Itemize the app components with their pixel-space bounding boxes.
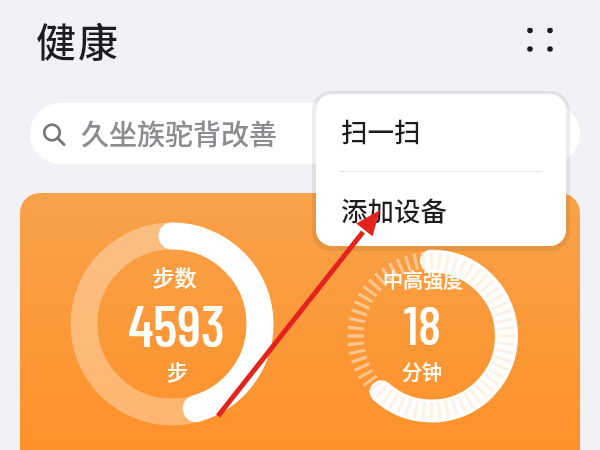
staticText: 扫一扫 — [341, 111, 421, 149]
staticText: 步数 — [152, 260, 197, 292]
staticText: 18 — [404, 292, 441, 352]
button[interactable] — [20, 193, 580, 450]
button[interactable]: 添加设备 — [316, 172, 566, 246]
staticText: 中高强度 — [383, 265, 463, 294]
staticText: 步 — [167, 356, 188, 386]
button[interactable] — [518, 18, 562, 62]
staticText: 分钟 — [402, 357, 442, 386]
staticText: 久坐族驼背改善 — [81, 113, 278, 154]
button[interactable]: 久坐族驼背改善 — [30, 103, 580, 164]
button[interactable]: 扫一扫 — [316, 94, 566, 171]
staticText: 健康 — [36, 11, 120, 69]
staticText: 4593 — [128, 290, 225, 350]
staticText: 添加设备 — [341, 190, 447, 228]
